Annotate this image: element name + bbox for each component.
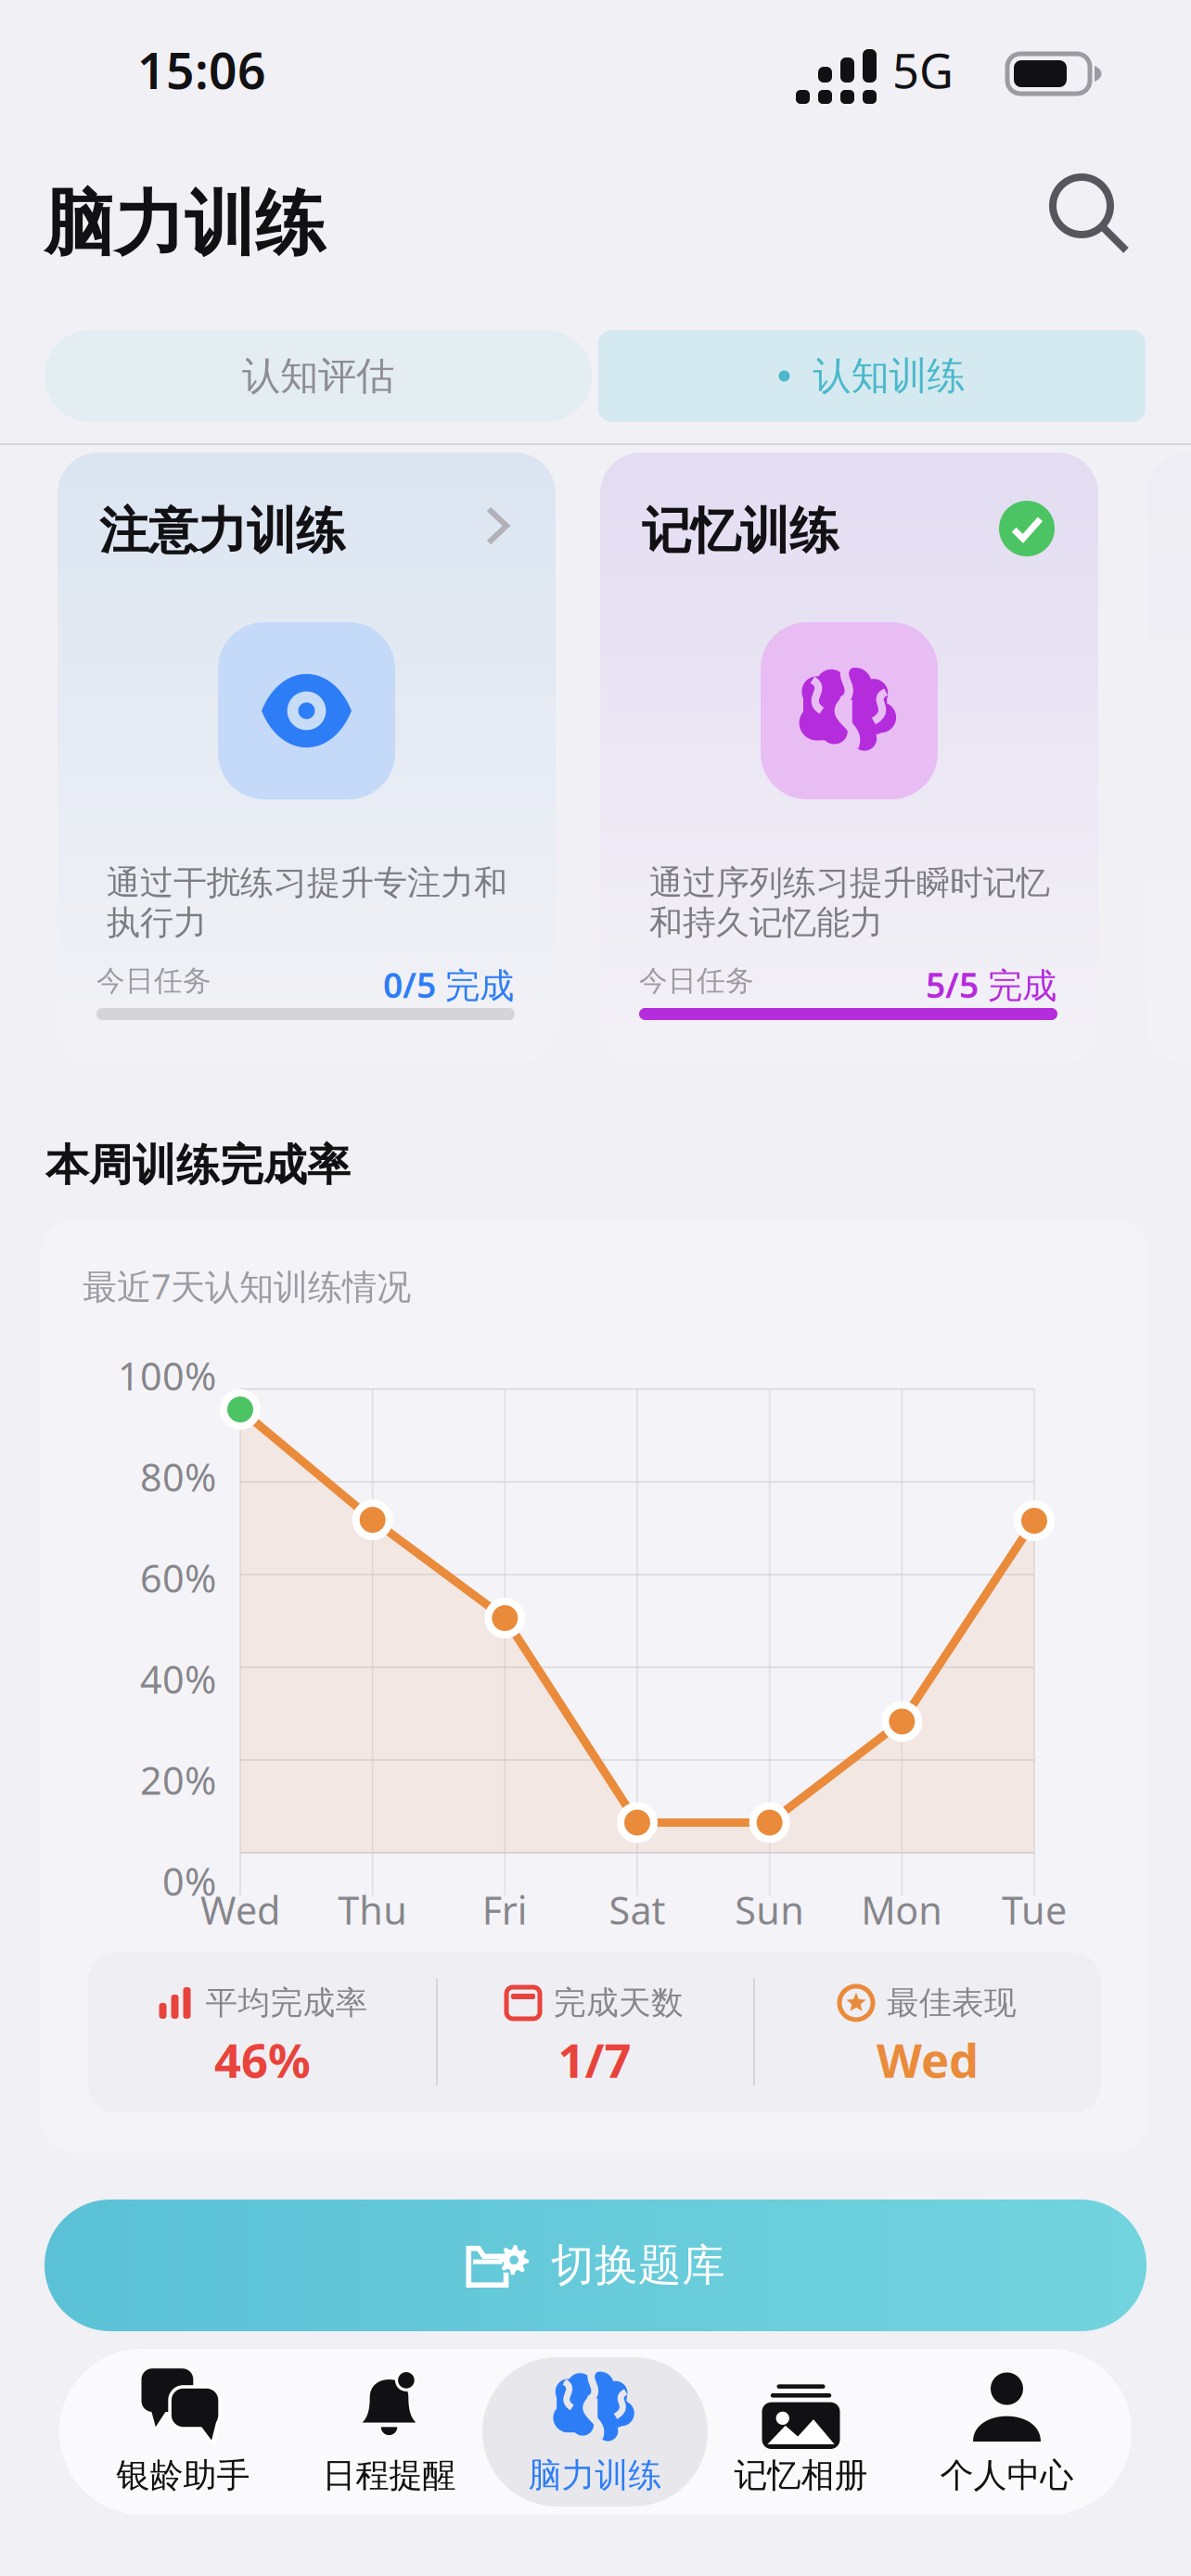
staticText: 脑力训练 [528,2455,662,2496]
staticText: 个人中心 [940,2455,1074,2496]
staticText: 银龄助手 [116,2455,250,2496]
staticText: Sat [609,1884,666,1935]
button[interactable]: 认知训练 [598,330,1146,422]
staticText: 今日任务 [96,963,211,998]
staticText: Wed [200,1884,280,1935]
staticText: 0/5 完成 [383,962,514,1008]
button[interactable]: 日程提醒 [276,2357,502,2506]
button[interactable]: 记忆相册 [688,2357,914,2506]
staticText: 平均完成率 [205,1983,368,2023]
staticText: 0% [162,1855,216,1906]
button[interactable]: 切换题库 [45,2200,1146,2331]
staticText: 日程提醒 [322,2455,456,2496]
staticText: 5G [892,39,954,101]
staticText: 执行力 [107,902,207,943]
staticText: 最近7天认知训练情况 [83,1263,411,1309]
staticText: 100% [118,1350,216,1401]
staticText: 46% [214,2028,311,2091]
staticText: 60% [140,1552,216,1603]
staticText: 20% [140,1754,216,1805]
staticText: 最佳表现 [887,1983,1017,2023]
staticText: 脑力训练 [44,181,326,267]
staticText: 今日任务 [639,963,754,998]
staticText: Mon [861,1884,943,1935]
staticText: 1/7 [558,2028,631,2091]
staticText: 注意力训练 [99,501,345,561]
staticText: Tue [1002,1884,1067,1935]
staticText: 80% [140,1451,216,1502]
staticText: 认知评估 [242,352,394,400]
button[interactable]: 银龄助手 [70,2357,296,2506]
staticText: 认知训练 [813,352,965,400]
staticText: 记忆训练 [642,501,839,561]
staticText: 通过干扰练习提升专注力和 [107,862,507,903]
staticText: 记忆相册 [734,2455,868,2496]
staticText: 完成天数 [554,1983,684,2023]
staticText: Sun [735,1884,804,1935]
staticText: Thu [338,1884,407,1935]
button[interactable]: 认知评估 [45,330,592,422]
staticText: Wed [877,2028,979,2091]
staticText: Fri [482,1884,528,1935]
staticText: 15:06 [137,37,266,103]
staticText: 40% [140,1653,216,1704]
button[interactable]: 脑力训练 [482,2357,708,2506]
button[interactable]: 记忆训练 [600,453,1098,1065]
staticText: 切换题库 [551,2239,725,2292]
button[interactable]: 注意力训练 [58,453,556,1065]
button[interactable]: 个人中心 [894,2357,1120,2506]
staticText: 5/5 完成 [926,962,1057,1008]
button[interactable]: Search [1041,165,1143,267]
staticText: 通过序列练习提升瞬时记忆 [649,862,1050,903]
staticText: 和持久记忆能力 [649,902,883,943]
staticText: 本周训练完成率 [45,1139,351,1192]
